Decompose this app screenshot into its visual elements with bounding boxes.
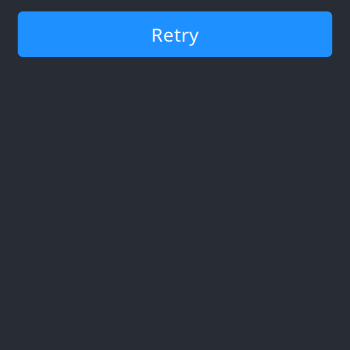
staticText: Retry [151, 22, 199, 47]
button[interactable]: Retry [18, 11, 332, 57]
